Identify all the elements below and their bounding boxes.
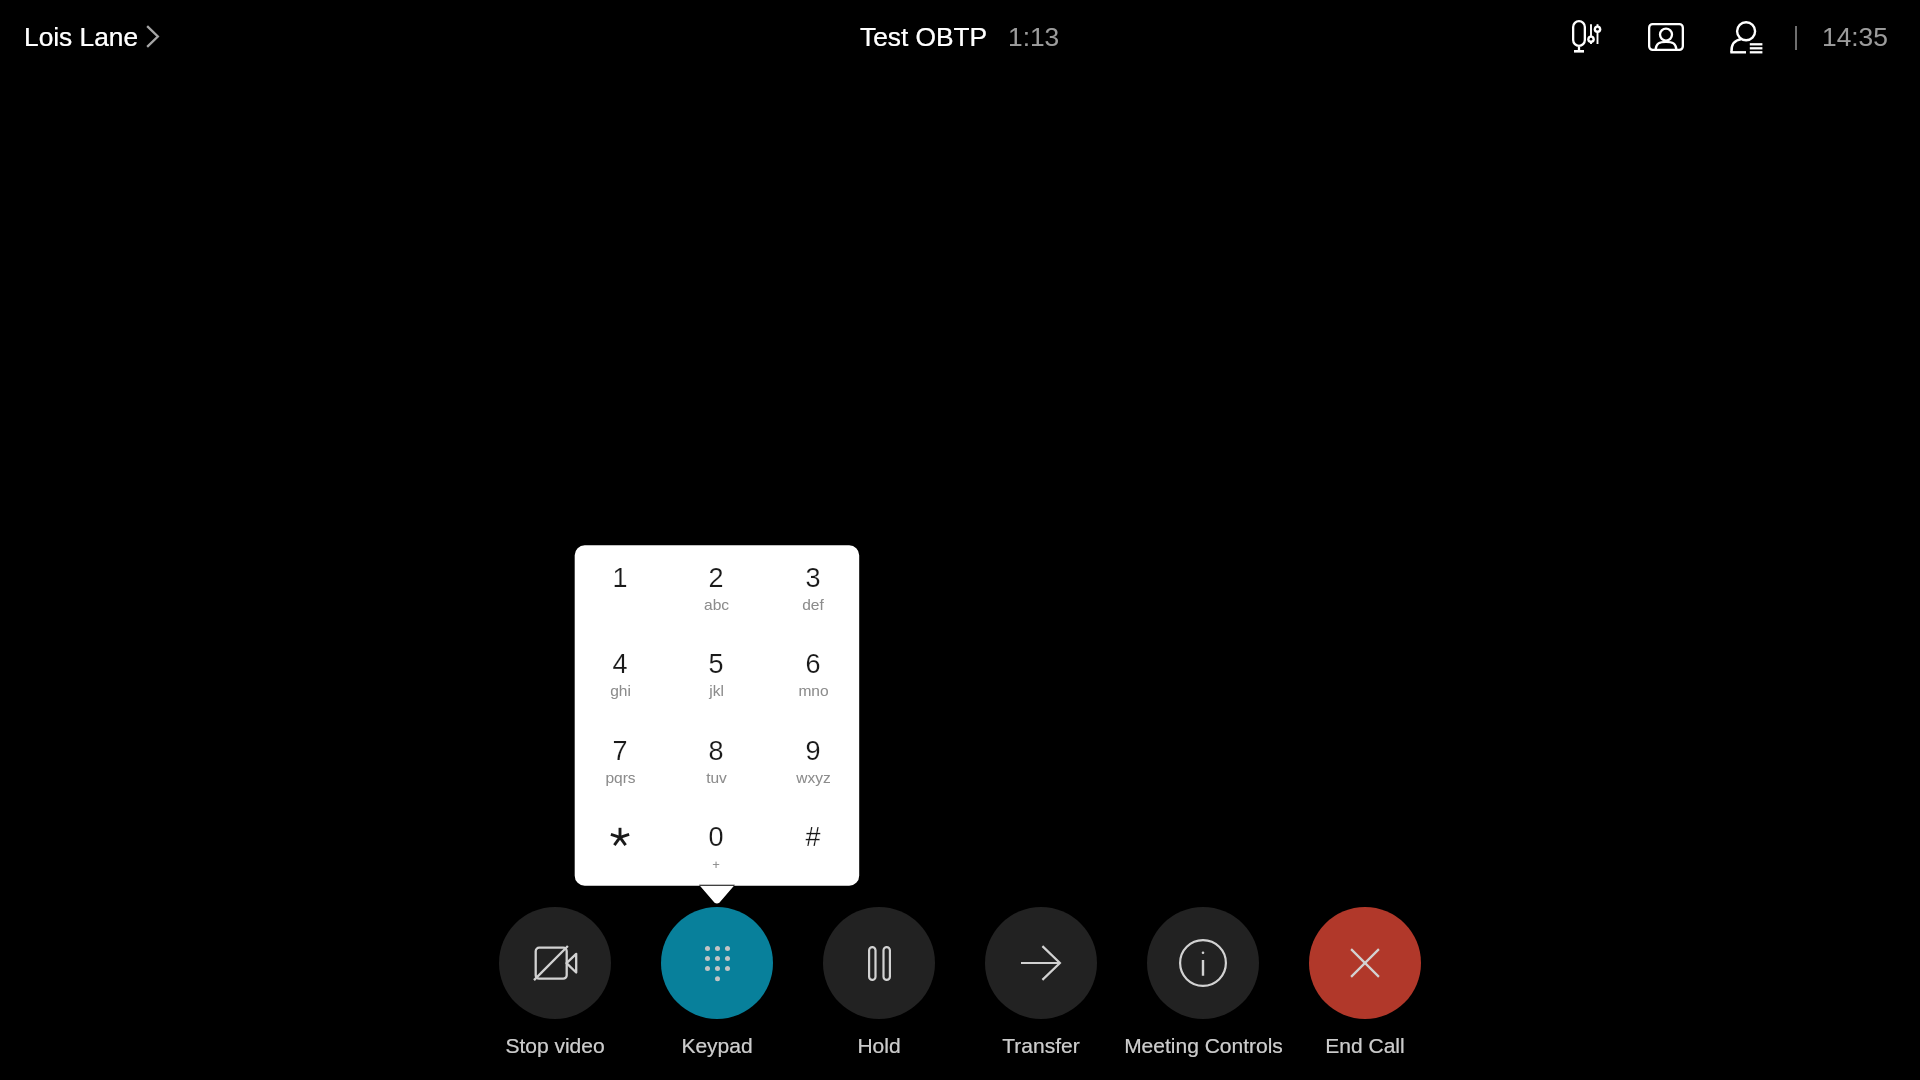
button[interactable]: 4 xyxy=(573,630,667,716)
button[interactable]: Lois Lane xyxy=(17,10,169,62)
staticText: # xyxy=(805,822,821,852)
staticText: 1:13 xyxy=(1008,22,1060,51)
button[interactable]: Stop video xyxy=(474,903,636,1057)
staticText: Stop video xyxy=(505,1034,605,1057)
button[interactable]: Self view xyxy=(1632,2,1700,72)
staticText: 4 xyxy=(612,649,628,679)
button[interactable]: # xyxy=(766,803,860,889)
staticText: ghi xyxy=(610,682,631,699)
staticText: 1 xyxy=(612,563,628,593)
staticText: 7 xyxy=(612,736,628,766)
staticText: 3 xyxy=(805,563,821,593)
staticText: def xyxy=(802,596,824,613)
staticText: Transfer xyxy=(1002,1034,1080,1057)
staticText: Test OBTP xyxy=(860,22,988,51)
staticText: Meeting Controls xyxy=(1124,1034,1283,1057)
button[interactable]: Hold xyxy=(798,903,960,1057)
staticText: abc xyxy=(704,596,729,613)
button[interactable]: 8 xyxy=(669,717,763,803)
staticText: 14:35 xyxy=(1822,22,1888,51)
staticText: 5 xyxy=(708,649,724,679)
button[interactable]: Transfer xyxy=(960,903,1122,1057)
button[interactable]: 0 xyxy=(669,803,763,889)
staticText: 9 xyxy=(805,736,821,766)
staticText: mno xyxy=(798,682,829,699)
button[interactable]: 1 xyxy=(573,544,667,630)
button[interactable]: 5 xyxy=(669,630,763,716)
button[interactable]: Participants xyxy=(1712,2,1780,72)
staticText: jkl xyxy=(709,682,724,699)
staticText: Lois Lane xyxy=(24,22,139,51)
button[interactable]: End Call xyxy=(1284,903,1446,1057)
button[interactable]: Microphone settings xyxy=(1554,2,1622,72)
staticText: Hold xyxy=(857,1034,901,1057)
staticText: 6 xyxy=(805,649,821,679)
button[interactable]: Keypad xyxy=(636,903,798,1057)
button[interactable]: 3 xyxy=(766,544,860,630)
button[interactable]: 2 xyxy=(669,544,763,630)
button[interactable]: 9 xyxy=(766,717,860,803)
staticText: wxyz xyxy=(796,769,831,786)
button[interactable]: * xyxy=(573,803,667,889)
staticText: 8 xyxy=(708,736,724,766)
staticText: + xyxy=(712,857,720,872)
staticText: pqrs xyxy=(605,769,636,786)
staticText: Keypad xyxy=(681,1034,753,1057)
button[interactable]: Meeting Controls xyxy=(1122,903,1284,1057)
staticText: 2 xyxy=(708,563,724,593)
button[interactable]: 7 xyxy=(573,717,667,803)
button[interactable]: 6 xyxy=(766,630,860,716)
staticText: 0 xyxy=(708,822,724,852)
staticText: End Call xyxy=(1325,1034,1405,1057)
staticText: tuv xyxy=(706,769,727,786)
